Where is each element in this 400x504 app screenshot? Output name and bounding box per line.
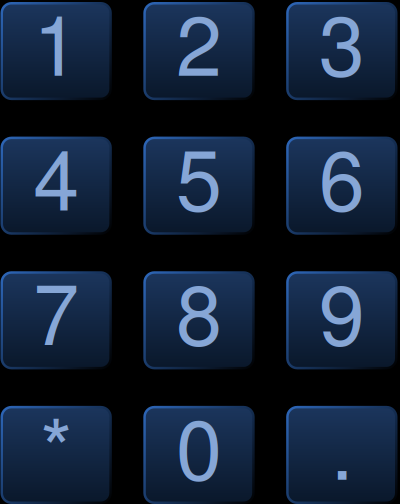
staticText: . [331, 414, 352, 496]
button[interactable]: 6 [286, 137, 397, 235]
staticText: 4 [33, 144, 79, 227]
staticText: 1 [33, 10, 79, 92]
staticText: 2 [176, 10, 222, 92]
staticText: 6 [319, 144, 365, 227]
button[interactable]: 2 [143, 2, 255, 100]
staticText: 9 [319, 279, 365, 362]
staticText: 8 [176, 279, 222, 362]
button[interactable]: . [286, 406, 397, 504]
staticText: 5 [176, 144, 222, 227]
button[interactable]: 4 [0, 137, 112, 235]
staticText: 3 [319, 10, 365, 92]
button[interactable]: 3 [286, 2, 397, 100]
staticText: 0 [176, 414, 222, 496]
button[interactable]: 9 [286, 271, 397, 369]
staticText: 7 [33, 279, 79, 362]
button[interactable]: 1 [0, 2, 112, 100]
button[interactable]: 5 [143, 137, 255, 235]
button[interactable]: 7 [0, 271, 112, 369]
button[interactable]: 0 [143, 406, 255, 504]
staticText: * [40, 414, 72, 496]
button[interactable]: 8 [143, 271, 255, 369]
button[interactable]: * [0, 406, 112, 504]
